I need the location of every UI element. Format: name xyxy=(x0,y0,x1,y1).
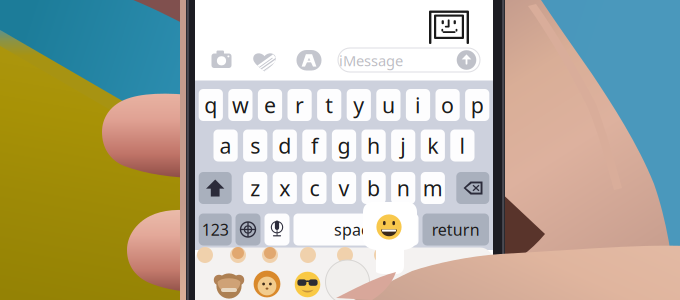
staticText: d xyxy=(278,131,291,160)
button[interactable]: Dictation xyxy=(0,0,680,300)
button[interactable]: e xyxy=(0,0,680,300)
button[interactable]: Camera xyxy=(0,0,680,300)
staticText: p xyxy=(471,91,484,119)
staticText: n xyxy=(397,174,410,202)
button[interactable]: q xyxy=(0,0,680,300)
staticText: l xyxy=(459,131,465,160)
button[interactable]: k xyxy=(0,0,680,300)
button[interactable]: v xyxy=(0,0,680,300)
button[interactable]: x xyxy=(0,0,680,300)
button[interactable]: h xyxy=(0,0,680,300)
button[interactable]: z xyxy=(0,0,680,300)
staticText: 123 xyxy=(202,219,229,240)
button[interactable]: Shift xyxy=(0,0,680,300)
staticText: o xyxy=(441,91,454,119)
button[interactable]: g xyxy=(0,0,680,300)
staticText: m xyxy=(423,174,443,202)
staticText: k xyxy=(427,131,438,160)
button[interactable]: r xyxy=(0,0,680,300)
staticText: c xyxy=(309,174,319,202)
button[interactable]: a xyxy=(0,0,680,300)
button[interactable]: 123 xyxy=(0,0,680,300)
button[interactable]: m xyxy=(0,0,680,300)
staticText: f xyxy=(311,131,318,160)
staticText: z xyxy=(250,174,260,202)
button[interactable]: Delete xyxy=(0,0,680,300)
staticText: s xyxy=(250,131,260,160)
staticText: b xyxy=(367,174,380,202)
staticText: w xyxy=(232,91,249,119)
button[interactable]: p xyxy=(0,0,680,300)
button[interactable]: s xyxy=(0,0,680,300)
staticText: iMessage xyxy=(339,51,403,70)
button[interactable]: o xyxy=(0,0,680,300)
button[interactable]: l xyxy=(0,0,680,300)
button[interactable]: return xyxy=(0,0,680,300)
button[interactable]: f xyxy=(0,0,680,300)
staticText: x xyxy=(279,174,290,202)
button[interactable]: u xyxy=(0,0,680,300)
button[interactable]: Digital Touch xyxy=(0,0,680,300)
button[interactable]: space xyxy=(0,0,680,300)
staticText: a xyxy=(220,131,232,160)
button[interactable]: b xyxy=(0,0,680,300)
staticText: g xyxy=(337,131,350,160)
button[interactable]: iMessage xyxy=(0,0,680,300)
button[interactable]: Smiling face with sunglasses emoji xyxy=(0,0,680,300)
button[interactable]: y xyxy=(0,0,680,300)
button[interactable]: w xyxy=(0,0,680,300)
staticText: space xyxy=(334,219,378,240)
button[interactable]: See-no-evil monkey emoji xyxy=(0,0,680,300)
staticText: j xyxy=(400,131,406,160)
staticText: e xyxy=(264,91,276,119)
staticText: h xyxy=(367,131,380,160)
button[interactable]: c xyxy=(0,0,680,300)
button[interactable]: d xyxy=(0,0,680,300)
button[interactable]: Send xyxy=(0,0,680,300)
staticText: i xyxy=(415,91,421,119)
staticText: r xyxy=(295,91,304,119)
staticText: y xyxy=(353,91,364,119)
staticText: v xyxy=(338,174,349,202)
button[interactable]: j xyxy=(0,0,680,300)
button[interactable]: t xyxy=(0,0,680,300)
staticText: t xyxy=(325,91,333,119)
button[interactable]: i xyxy=(0,0,680,300)
button[interactable]: n xyxy=(0,0,680,300)
button[interactable]: Lion emoji xyxy=(0,0,680,300)
staticText: u xyxy=(382,91,395,119)
staticText: return xyxy=(432,219,480,240)
button[interactable]: Switch keyboard xyxy=(0,0,680,300)
button[interactable]: App Store xyxy=(0,0,680,300)
staticText: q xyxy=(204,91,217,119)
